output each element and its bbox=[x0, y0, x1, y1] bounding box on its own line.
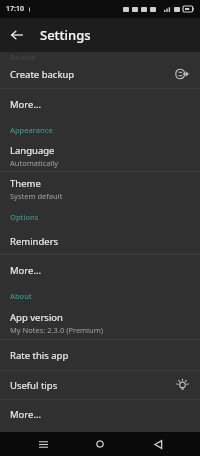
staticText: Automatically bbox=[10, 158, 59, 168]
staticText: Theme bbox=[10, 177, 41, 190]
button[interactable]: Back bbox=[143, 432, 173, 456]
staticText: App version bbox=[10, 311, 63, 324]
button[interactable]: Create backup bbox=[0, 60, 200, 88]
staticText: Language bbox=[10, 144, 55, 157]
staticText: More... bbox=[10, 408, 42, 421]
other: Useful tips bbox=[172, 375, 192, 395]
button[interactable]: Home bbox=[85, 432, 115, 456]
button[interactable]: Theme bbox=[0, 172, 200, 206]
other: Create backup bbox=[172, 64, 192, 84]
staticText: 17:10 bbox=[6, 4, 24, 14]
button[interactable]: More... bbox=[0, 400, 200, 428]
button[interactable]: More... bbox=[0, 255, 200, 285]
staticText: More... bbox=[10, 264, 42, 277]
staticText: Appearance bbox=[10, 125, 53, 135]
staticText: More... bbox=[10, 98, 42, 111]
button[interactable]: App version bbox=[0, 307, 200, 339]
button[interactable]: Back bbox=[0, 18, 34, 52]
staticText: Settings bbox=[40, 26, 91, 44]
button[interactable]: Useful tips bbox=[0, 371, 200, 399]
staticText: Useful tips bbox=[10, 379, 58, 392]
button[interactable]: Recent apps bbox=[28, 432, 58, 456]
staticText: Options bbox=[10, 212, 39, 222]
button[interactable]: More... bbox=[0, 89, 200, 119]
staticText: Backup bbox=[10, 52, 36, 60]
button[interactable]: Reminders bbox=[0, 228, 200, 254]
button[interactable]: Rate this app bbox=[0, 340, 200, 370]
staticText: My Notes: 2.3.0 (Premium) bbox=[10, 325, 103, 335]
staticText: System default bbox=[10, 191, 63, 201]
button[interactable]: Language bbox=[0, 141, 200, 171]
staticText: Reminders bbox=[10, 235, 59, 248]
staticText: About bbox=[10, 291, 32, 301]
staticText: Rate this app bbox=[10, 349, 69, 362]
staticText: Create backup bbox=[10, 68, 75, 81]
